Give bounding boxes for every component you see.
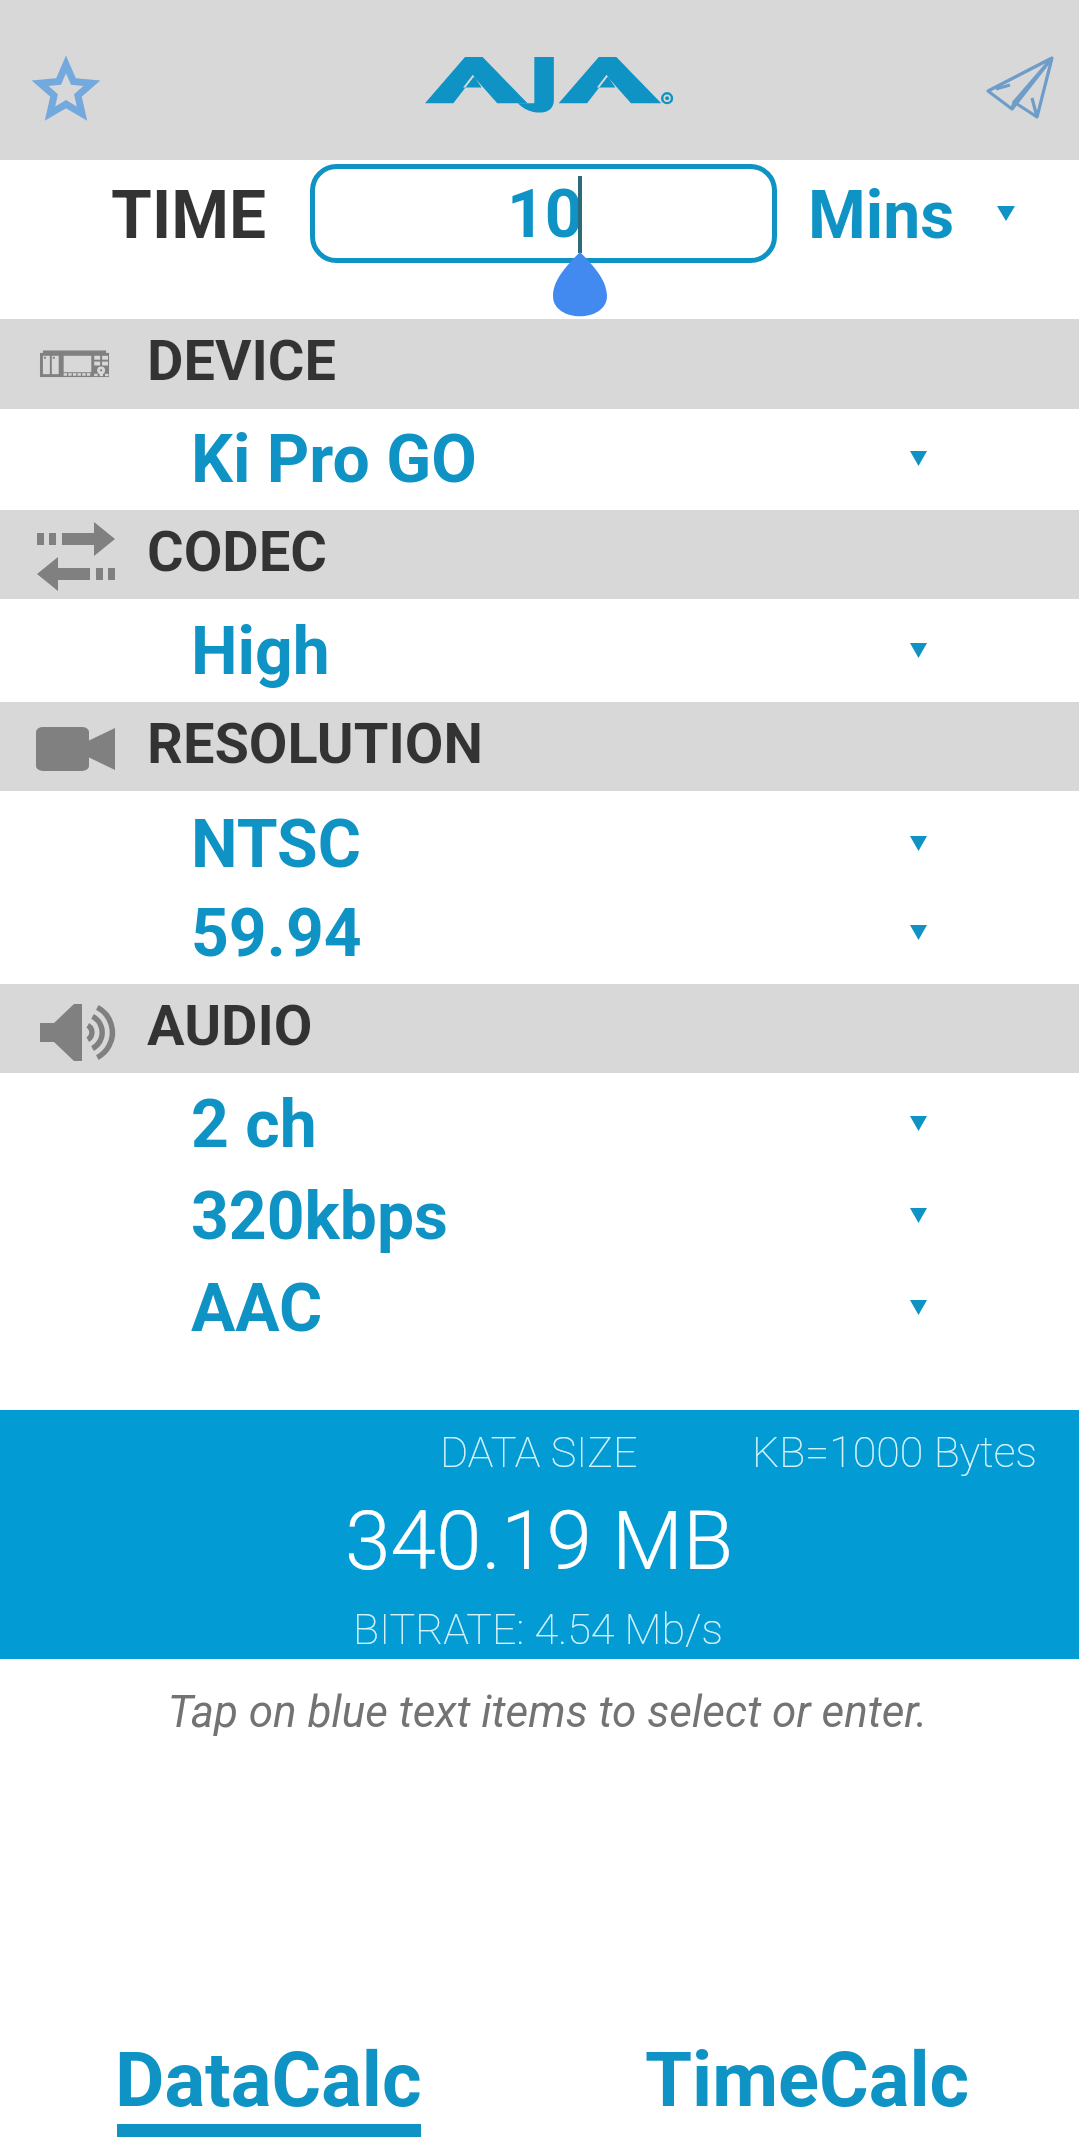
button[interactable]: Mins	[798, 166, 1025, 265]
button[interactable]: 2 ch	[0, 1073, 1079, 1166]
staticText: DEVICE	[147, 328, 336, 394]
staticText: High	[191, 613, 330, 690]
staticText: AUDIO	[147, 993, 313, 1059]
staticText: Tap on blue text items to select or ente…	[8, 1686, 1079, 1738]
staticText: Ki Pro GO	[191, 421, 477, 498]
button[interactable]: 320kbps	[0, 1166, 1079, 1259]
button[interactable]: Share	[965, 26, 1071, 134]
staticText: 59.94	[191, 895, 362, 972]
staticText: 10	[507, 176, 583, 253]
staticText: CODEC	[147, 519, 327, 585]
staticText: RESOLUTION	[147, 711, 483, 777]
staticText: BITRATE: 4.54 Mb/s	[353, 1604, 723, 1654]
staticText: Mins	[808, 177, 955, 254]
staticText: 2 ch	[191, 1086, 317, 1163]
staticText: TimeCalc	[645, 2035, 970, 2124]
staticText: TIME	[111, 177, 267, 254]
staticText: DataCalc	[115, 2035, 422, 2124]
staticText: 320kbps	[191, 1178, 449, 1255]
staticText: KB=1000 Bytes	[752, 1427, 1037, 1477]
button[interactable]	[310, 164, 777, 263]
button[interactable]: High	[0, 599, 1079, 702]
button[interactable]: Favourite	[12, 26, 118, 134]
staticText: AAC	[191, 1270, 323, 1347]
staticText: NTSC	[191, 806, 361, 883]
button[interactable]: Ki Pro GO	[0, 409, 1079, 510]
button[interactable]: 59.94	[0, 887, 1079, 984]
staticText: 340.19 MB	[345, 1493, 734, 1589]
staticText: DATA SIZE	[440, 1427, 638, 1477]
button[interactable]: NTSC	[0, 791, 1079, 887]
button[interactable]: TimeCalc	[540, 2000, 1079, 2154]
button[interactable]: DataCalc	[0, 2000, 539, 2154]
button[interactable]: AAC	[0, 1259, 1079, 1410]
